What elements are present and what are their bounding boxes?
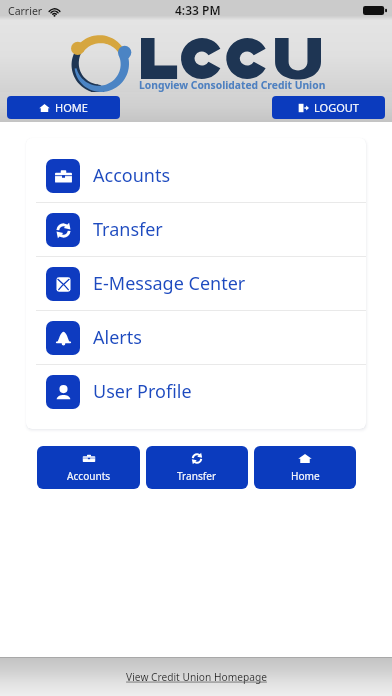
button[interactable]: Alerts — [26, 311, 366, 364]
other: Home — [39, 103, 50, 113]
button[interactable]: Home — [7, 96, 120, 119]
staticText: Accounts — [67, 469, 111, 483]
staticText: LOGOUT — [314, 100, 359, 115]
staticText: User Profile — [93, 379, 192, 404]
button[interactable]: View Credit Union Homepage — [126, 670, 267, 684]
staticText: Longview Consolidated Credit Union — [139, 78, 326, 92]
staticText: Carrier — [8, 4, 43, 18]
button[interactable]: Accounts — [26, 149, 366, 202]
button[interactable]: E-Message Center — [26, 257, 366, 310]
button[interactable]: Transfer — [146, 446, 248, 489]
staticText: 4:33 PM — [175, 2, 221, 18]
staticText: Home — [291, 469, 320, 483]
button[interactable]: Home — [254, 446, 356, 489]
staticText: Transfer — [93, 217, 163, 242]
other: Logout — [298, 103, 309, 113]
staticText: Accounts — [93, 163, 171, 188]
button[interactable]: User Profile — [26, 365, 366, 418]
staticText: E-Message Center — [93, 271, 246, 296]
staticText: Alerts — [93, 325, 142, 350]
staticText: Transfer — [177, 469, 217, 483]
button[interactable]: Transfer — [26, 203, 366, 256]
staticText: HOME — [55, 100, 88, 115]
button[interactable]: Logout — [272, 96, 385, 119]
button[interactable]: Accounts — [37, 446, 140, 489]
